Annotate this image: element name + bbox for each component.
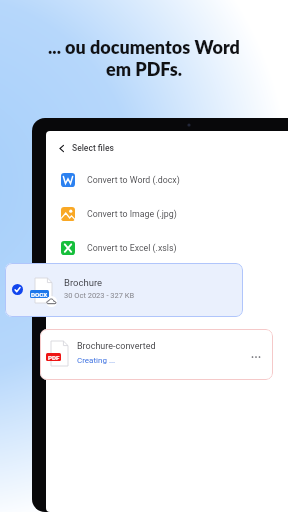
button[interactable]: Convert to Excel (.xsls) [46, 231, 288, 265]
button[interactable]: Convert to Image (.jpg) [46, 197, 288, 231]
button[interactable]: PDF [40, 329, 273, 380]
staticText: Brochure [64, 277, 103, 288]
other: More options [249, 350, 263, 364]
staticText: Select files [72, 143, 114, 153]
other: Selected [12, 284, 23, 295]
staticText: Convert to Word (.docx) [87, 175, 180, 185]
staticText: PDF [48, 354, 60, 361]
staticText: 30 Oct 2023 - 327 KB [64, 291, 135, 300]
staticText: Creating ... [77, 356, 116, 365]
staticText: ... ou documentos Word em PDFs. [48, 36, 240, 80]
button[interactable]: Selected [5, 263, 243, 317]
staticText: Convert to Image (.jpg) [87, 209, 177, 219]
button[interactable]: Convert to Word (.docx) [46, 163, 288, 197]
button[interactable]: Back [46, 137, 114, 159]
staticText: Brochure-converted [77, 341, 156, 352]
other: Back [57, 144, 66, 153]
staticText: Convert to Excel (.xsls) [87, 243, 177, 253]
staticText: DOCX [31, 291, 48, 298]
